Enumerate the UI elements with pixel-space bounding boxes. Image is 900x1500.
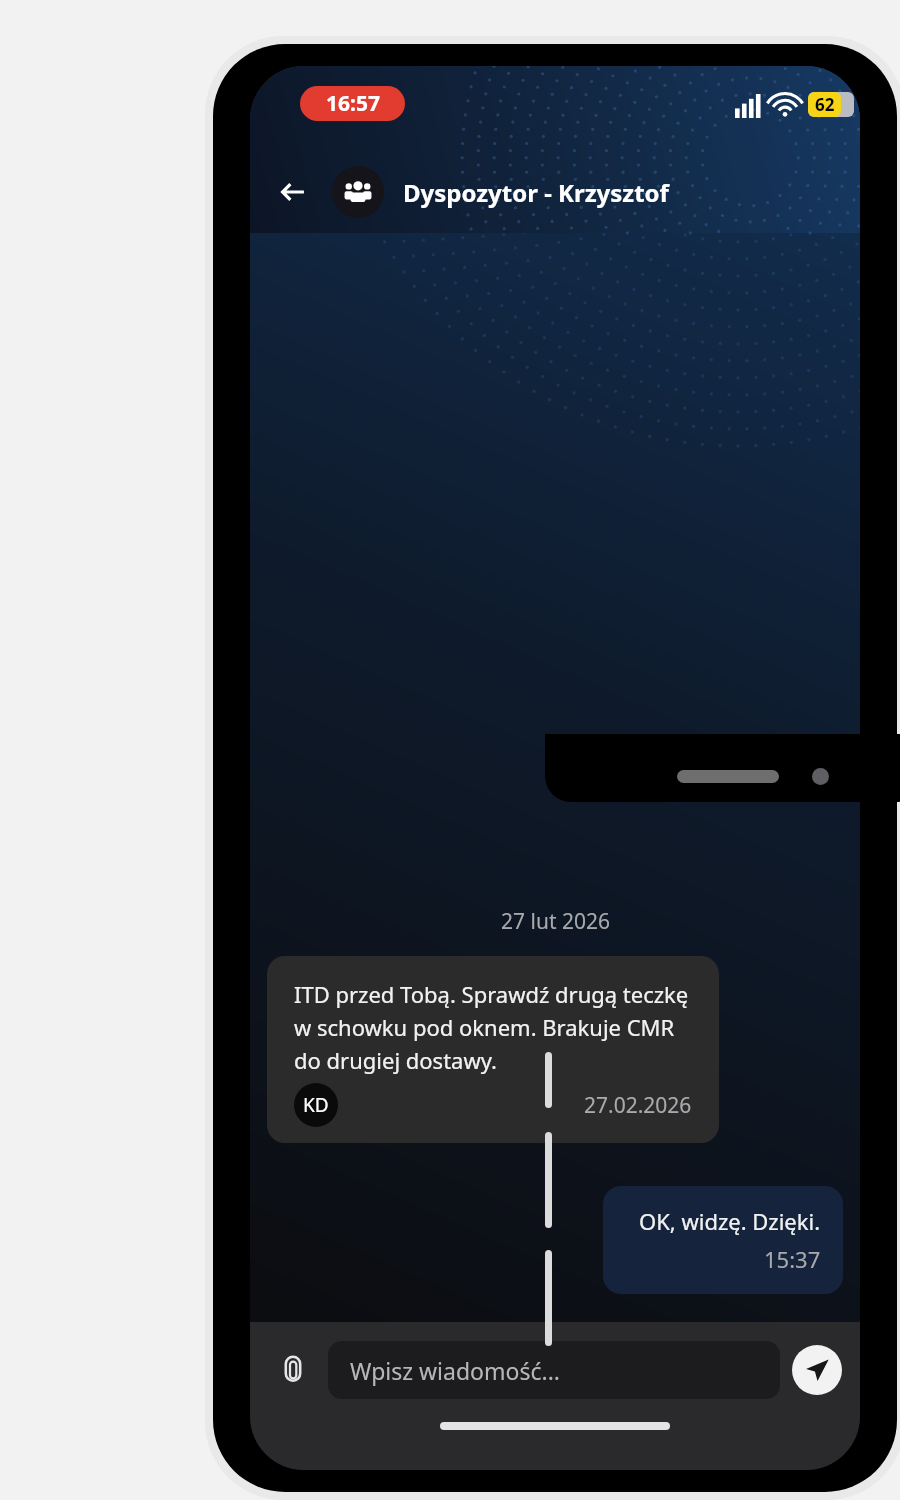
button[interactable]: OK, widzę. Dzięki.	[603, 1186, 843, 1294]
staticText: 16:57	[326, 89, 380, 118]
staticText: ITD przed Tobą. Sprawdź drugą teczkę w s…	[294, 979, 692, 1075]
staticText: OK, widzę. Dzięki.	[639, 1206, 821, 1236]
staticText: 27 lut 2026	[501, 907, 610, 936]
staticText: 27.02.2026	[584, 1091, 692, 1120]
button[interactable]: Group info	[332, 166, 384, 218]
staticText: 62	[815, 93, 835, 116]
button[interactable]: Attach file	[268, 1345, 318, 1395]
staticText: KD	[303, 1092, 329, 1118]
staticText: Wpisz wiadomość...	[350, 1355, 560, 1386]
button[interactable]: Send	[792, 1345, 842, 1395]
button[interactable]: Wpisz wiadomość...	[328, 1341, 780, 1399]
button[interactable]: ITD przed Tobą. Sprawdź drugą teczkę w s…	[267, 956, 719, 1143]
staticText: Dyspozytor - Krzysztof	[403, 176, 669, 209]
button[interactable]: Back	[268, 167, 318, 217]
staticText: 15:37	[764, 1244, 821, 1274]
